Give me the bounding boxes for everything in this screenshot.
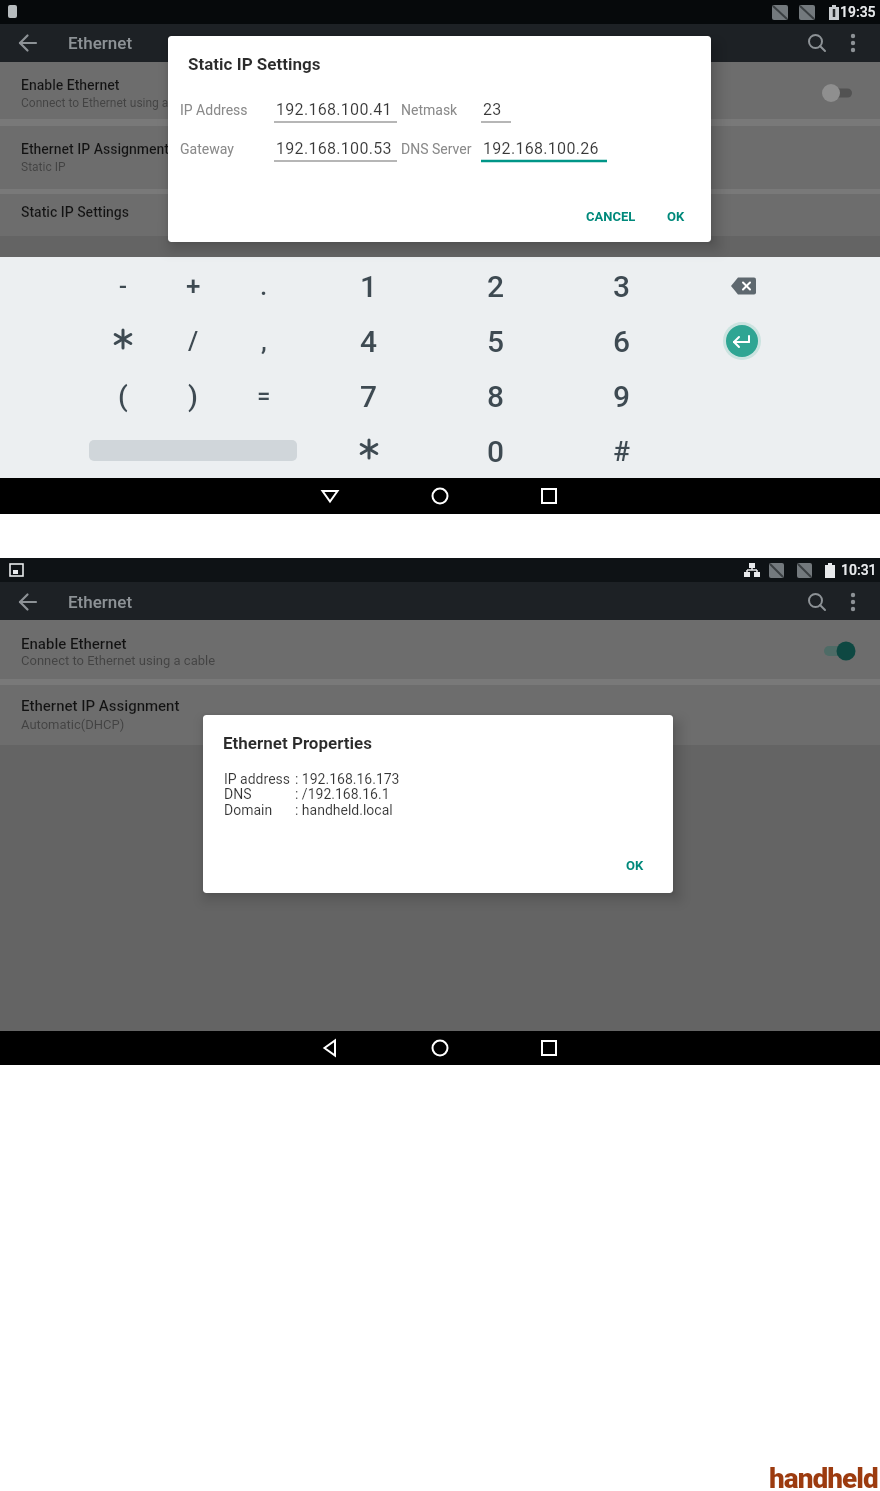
staticText: handheld [769,1462,878,1491]
button[interactable]: + [163,264,223,308]
staticText: 3 [613,269,631,304]
staticText: Connect to Ethernet using a [21,96,169,110]
staticText: Ethernet Properties [223,733,372,753]
button[interactable]: 3 [577,264,667,308]
staticText: Netmask [401,102,458,118]
staticText: Static IP [21,160,66,174]
button[interactable]: 8 [451,374,541,418]
staticText: 7 [360,379,378,414]
staticText: Enable Ethernet [21,635,127,653]
button[interactable]: - [93,264,153,308]
staticText: = [257,382,271,410]
staticText: DNS Server [401,141,472,157]
button[interactable] [845,32,861,54]
staticText: ( [118,380,128,413]
button[interactable] [320,486,340,506]
button[interactable]: OK [656,201,696,231]
button[interactable] [0,685,880,745]
button[interactable] [818,84,856,102]
button[interactable]: 2 [451,264,541,308]
staticText: 19:35 [840,4,876,20]
staticText: CANCEL [586,209,636,224]
button[interactable] [806,32,828,54]
staticText: : /192.168.16.1 [295,786,390,802]
staticText: / [188,326,199,356]
staticText: Ethernet IP Assignment [21,141,169,157]
staticText: 192.168.100.26 [483,139,599,158]
staticText: OK [626,858,644,873]
button[interactable] [18,33,38,53]
staticText: : 192.168.16.173 [295,771,400,787]
staticText: ) [188,380,198,413]
button[interactable] [430,486,450,506]
staticText: + [186,271,201,301]
staticText: Connect to Ethernet using a cable [21,653,216,668]
button[interactable] [806,591,828,613]
staticText: 1 [360,269,378,304]
staticText: Static IP Settings [21,204,129,220]
button[interactable] [18,592,38,612]
button[interactable] [539,1038,559,1058]
staticText: Ethernet [68,592,133,612]
button[interactable]: OK [615,850,655,880]
button[interactable] [729,277,757,295]
button[interactable] [347,427,391,471]
staticText: 0 [487,434,505,469]
staticText: Ethernet [68,33,133,53]
staticText: 8 [487,379,505,414]
staticText: DNS [224,786,252,802]
button[interactable]: ) [163,374,223,418]
button[interactable]: , [234,319,294,363]
button[interactable] [726,325,758,357]
button[interactable]: 1 [324,264,414,308]
button[interactable]: 5 [451,319,541,363]
button[interactable]: = [234,374,294,418]
staticText: 10:31 [841,562,877,578]
button[interactable] [430,1038,450,1058]
staticText: IP Address [180,102,248,118]
staticText: 5 [487,324,505,359]
button[interactable] [0,620,880,679]
button[interactable] [845,591,861,613]
button[interactable] [320,1038,340,1058]
button[interactable]: # [577,429,667,473]
staticText: Ethernet IP Assignment [21,697,180,715]
staticText: 2 [487,269,505,304]
button[interactable]: / [163,319,223,363]
staticText: 192.168.100.41 [276,100,392,119]
staticText: . [260,271,268,301]
button[interactable] [0,62,880,119]
button[interactable] [0,126,880,189]
button[interactable] [822,641,858,661]
staticText: 9 [613,379,631,414]
button[interactable]: 6 [577,319,667,363]
staticText: Static IP Settings [188,54,321,74]
button[interactable] [101,317,145,361]
staticText: # [613,435,631,468]
staticText: - [119,272,127,300]
staticText: Domain [224,802,273,818]
staticText: 6 [613,324,631,359]
button[interactable]: CANCEL [573,201,648,231]
staticText: Enable Ethernet [21,77,120,93]
staticText: : handheld.local [295,802,393,818]
button[interactable]: . [234,264,294,308]
button[interactable]: 0 [451,429,541,473]
button[interactable]: 4 [324,319,414,363]
staticText: 4 [360,324,378,359]
staticText: 23 [483,100,502,119]
button[interactable]: ( [93,374,153,418]
staticText: OK [667,209,685,224]
staticText: Automatic(DHCP) [21,717,125,732]
button[interactable]: 7 [324,374,414,418]
button[interactable]: 9 [577,374,667,418]
button[interactable] [0,194,880,236]
button[interactable] [539,486,559,506]
staticText: 192.168.100.53 [276,139,392,158]
staticText: , [261,326,267,356]
staticText: IP address [224,771,291,787]
staticText: Gateway [180,141,234,157]
